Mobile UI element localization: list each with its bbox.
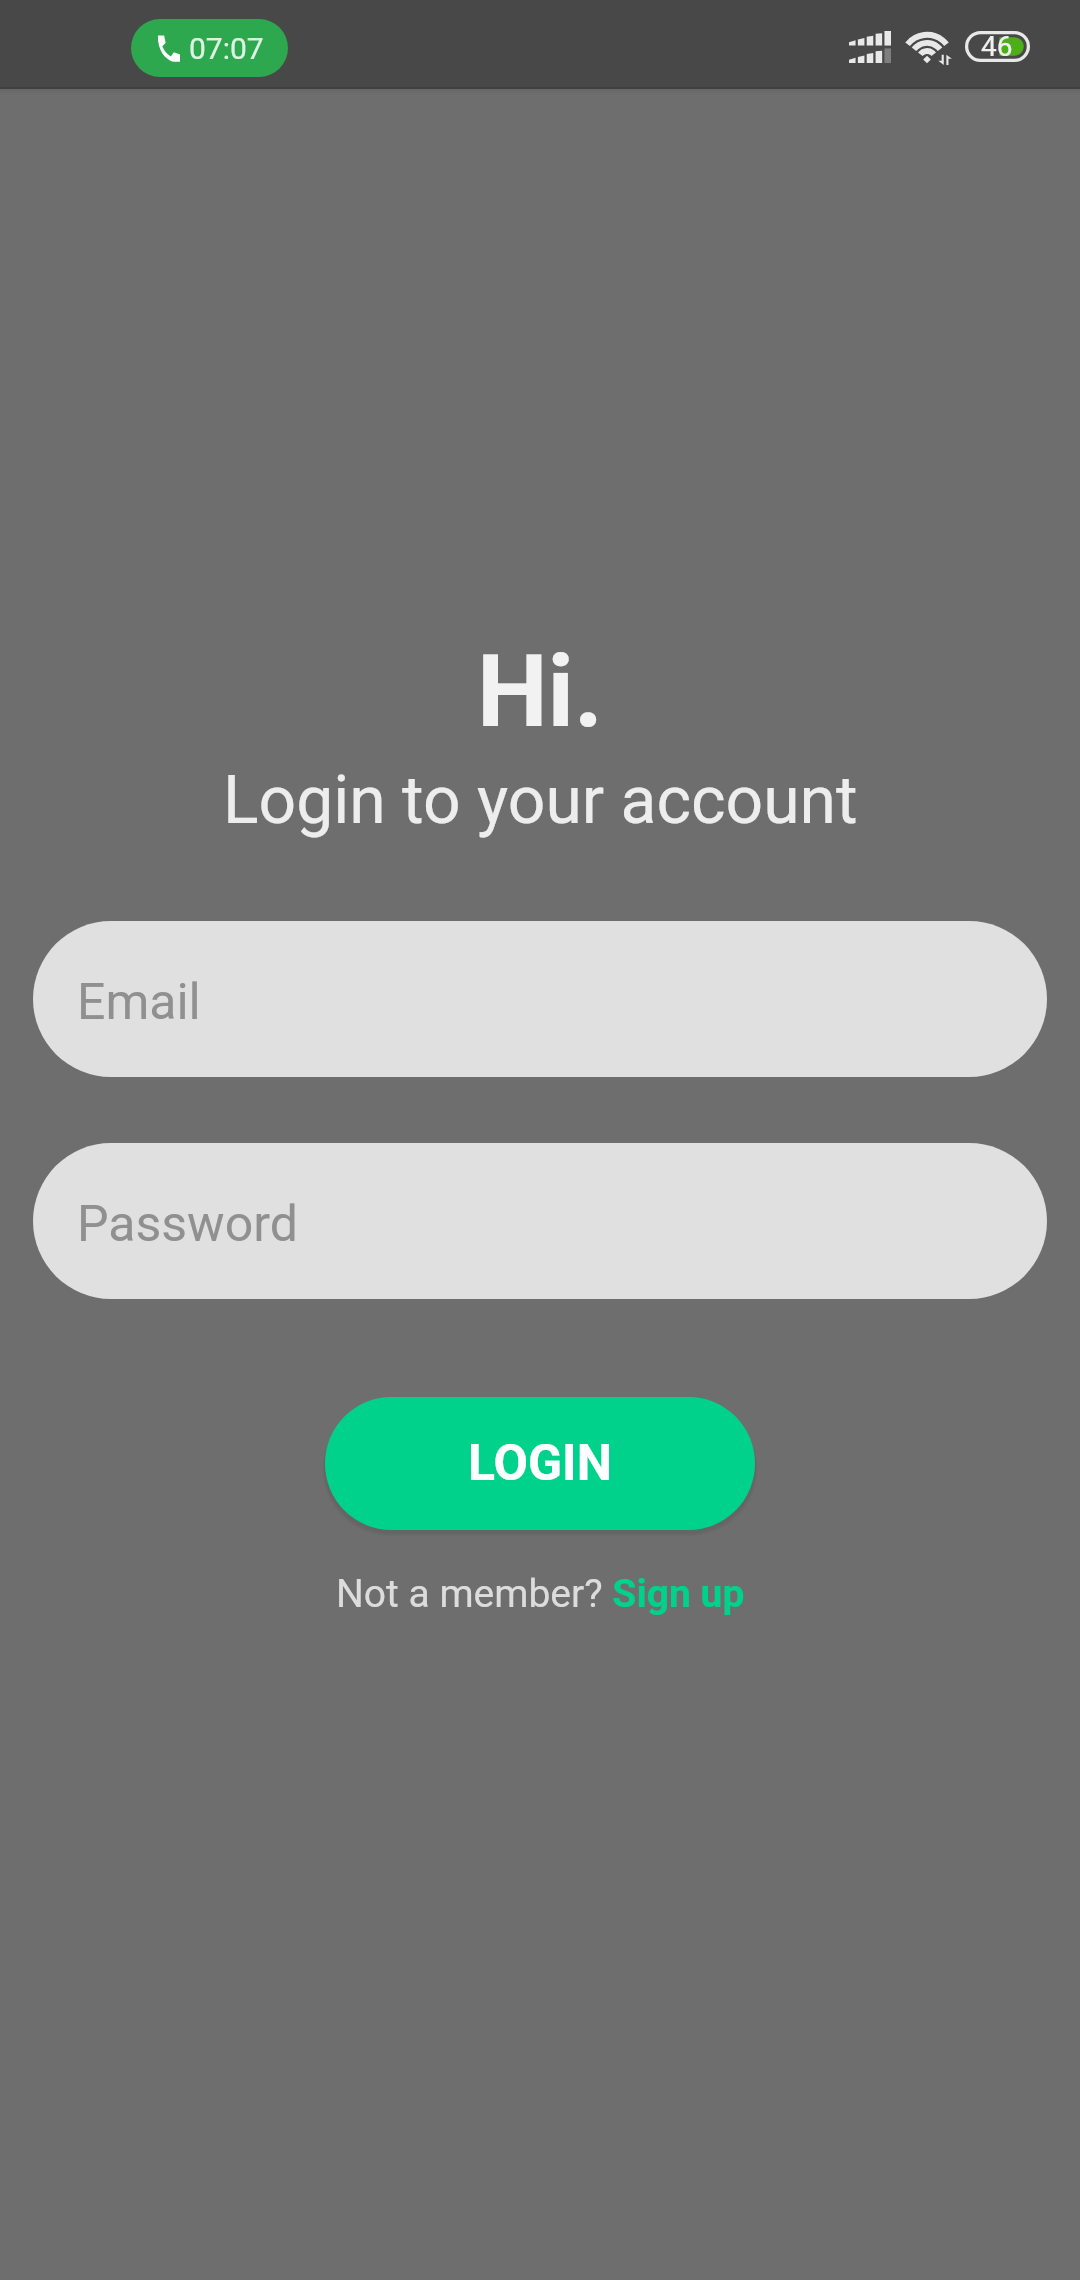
- button[interactable]: Email: [33, 921, 1047, 1077]
- staticText: Hi.: [477, 633, 604, 750]
- other: Mobile signal: [849, 31, 891, 63]
- other: Battery 46 percent: [965, 31, 1030, 62]
- staticText: 07:07: [189, 31, 264, 66]
- staticText: LOGIN: [468, 1434, 612, 1493]
- button[interactable]: Password: [33, 1143, 1047, 1299]
- staticText: Not a member? Sign up: [336, 1571, 745, 1617]
- staticText: 46: [981, 30, 1013, 61]
- button[interactable]: Ongoing call 07:07: [131, 19, 288, 77]
- staticText: Password: [77, 1195, 298, 1254]
- button[interactable]: LOGIN: [325, 1397, 755, 1530]
- button[interactable]: Not a member? Sign up: [326, 1557, 755, 1631]
- staticText: Email: [77, 973, 201, 1032]
- staticText: Login to your account: [223, 762, 858, 839]
- other: Wi-Fi: [903, 28, 950, 65]
